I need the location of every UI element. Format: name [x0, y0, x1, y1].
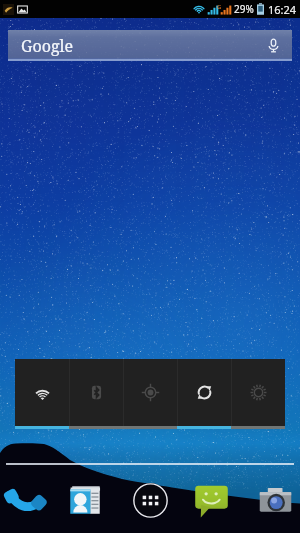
staticText: 29%: [234, 2, 254, 16]
button[interactable]: Bluetooth: [70, 359, 123, 426]
button[interactable]: Camera: [251, 476, 299, 524]
button[interactable]: Brightness: [232, 359, 285, 426]
button[interactable]: Location: [124, 359, 177, 426]
button[interactable]: Apps: [126, 476, 174, 524]
button[interactable]: Google: [8, 30, 292, 61]
staticText: 16:24: [268, 2, 297, 17]
staticText: Google: [21, 35, 74, 57]
staticText: G: [217, 3, 222, 11]
button[interactable]: Voice search: [254, 30, 292, 61]
button[interactable]: People: [61, 476, 109, 524]
button[interactable]: Phone: [1, 476, 49, 524]
button[interactable]: Messaging: [187, 476, 235, 524]
button[interactable]: Wi-Fi: [15, 359, 69, 426]
button[interactable]: Sync: [178, 359, 231, 426]
